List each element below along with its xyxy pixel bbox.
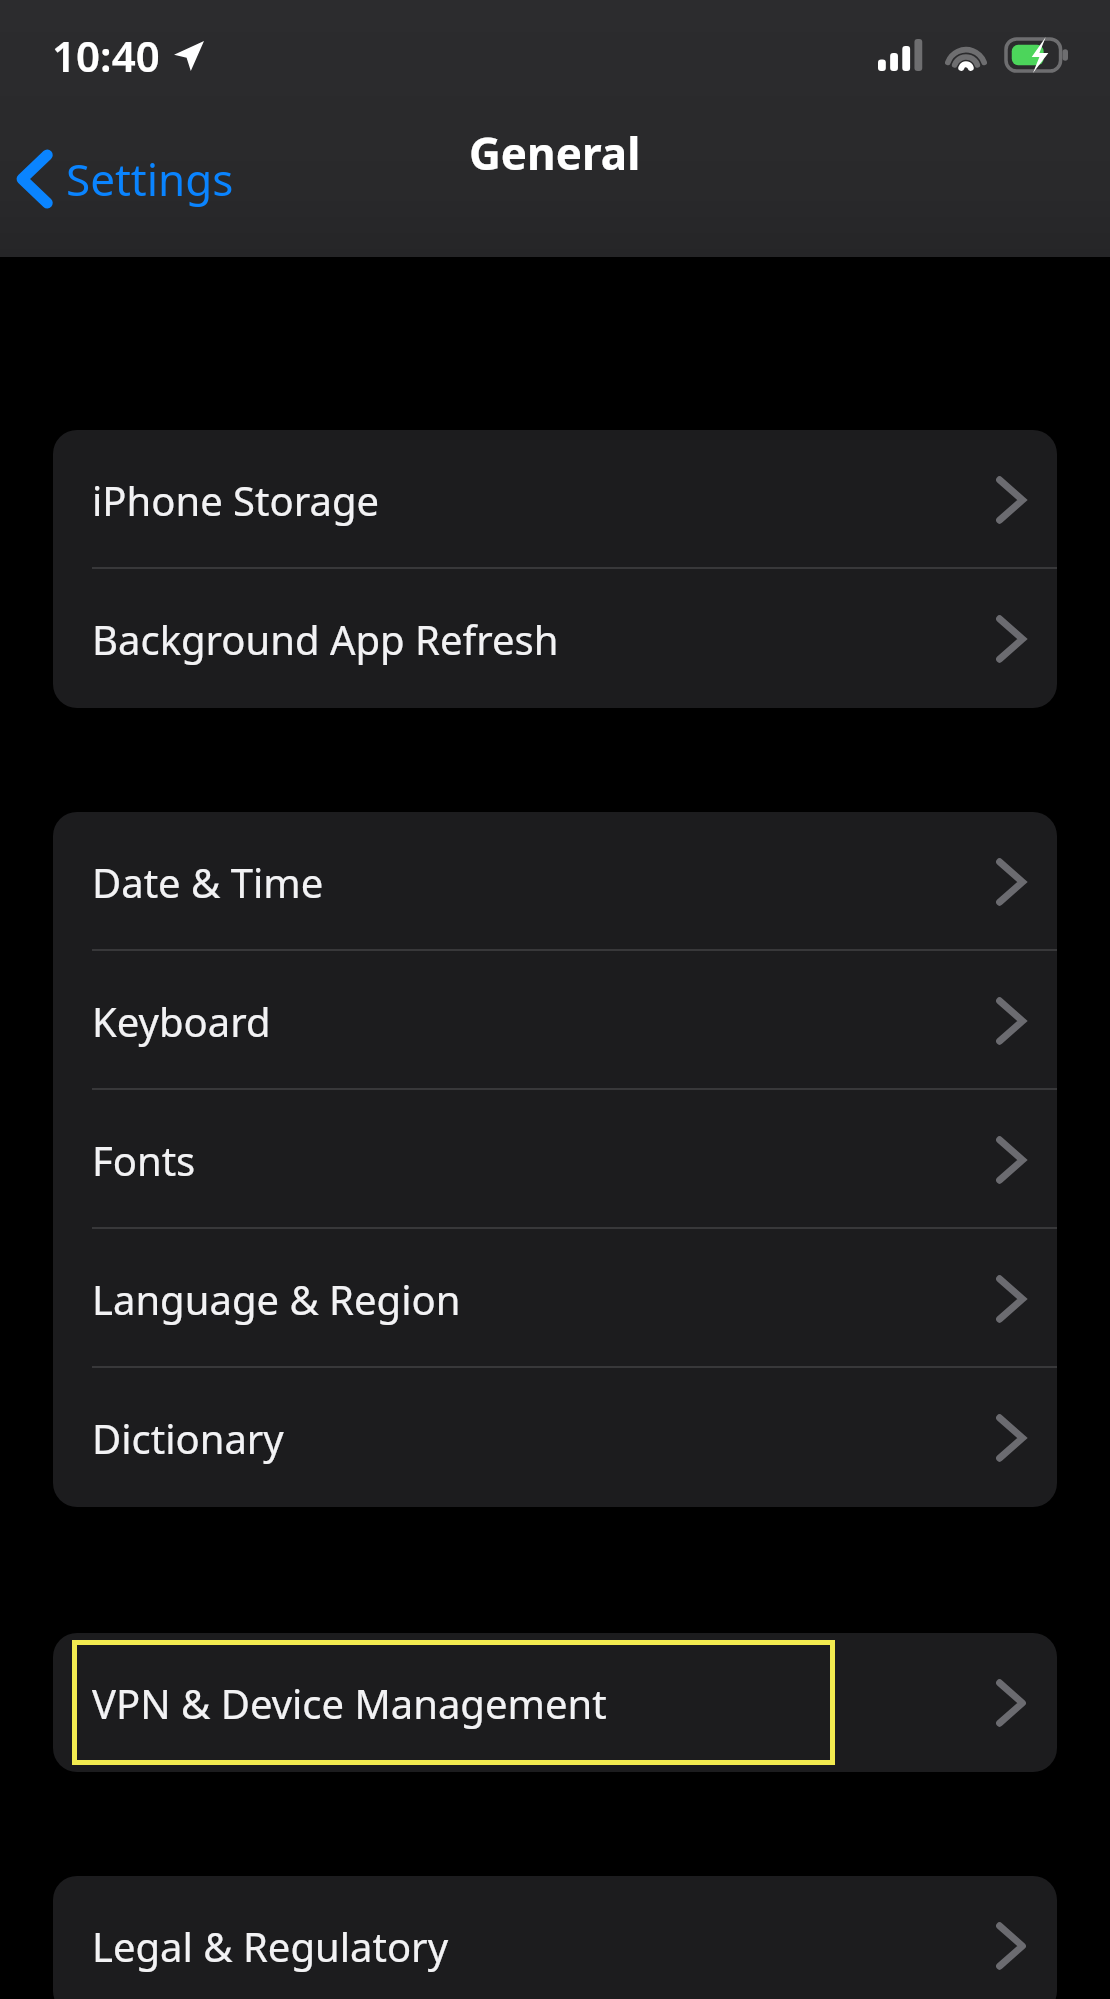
staticText: 10:40 xyxy=(52,27,160,84)
staticText: Legal & Regulatory xyxy=(92,1919,449,1973)
button[interactable]: Keyboard xyxy=(53,951,1057,1090)
staticText: Dictionary xyxy=(92,1411,284,1465)
staticText: Fonts xyxy=(92,1133,196,1187)
button[interactable]: Fonts xyxy=(53,1090,1057,1229)
staticText: Date & Time xyxy=(92,855,324,909)
staticText: Background App Refresh xyxy=(92,612,559,666)
button[interactable]: Dictionary xyxy=(53,1368,1057,1507)
staticText: General xyxy=(469,123,641,183)
button[interactable]: iPhone Storage xyxy=(53,430,1057,569)
button[interactable]: Settings xyxy=(18,149,234,209)
staticText: Language & Region xyxy=(92,1272,461,1326)
button[interactable]: VPN & Device Management xyxy=(53,1633,1057,1772)
button[interactable]: Language & Region xyxy=(53,1229,1057,1368)
staticText: CarPlay xyxy=(92,133,234,187)
button[interactable]: Background App Refresh xyxy=(53,569,1057,708)
staticText: VPN & Device Management xyxy=(92,1676,607,1730)
button[interactable]: Legal & Regulatory xyxy=(53,1876,1057,1999)
staticText: iPhone Storage xyxy=(92,473,380,527)
staticText: Keyboard xyxy=(92,994,271,1048)
staticText: Settings xyxy=(66,149,234,209)
button[interactable]: CarPlay xyxy=(53,90,1057,229)
button[interactable]: Date & Time xyxy=(53,812,1057,951)
